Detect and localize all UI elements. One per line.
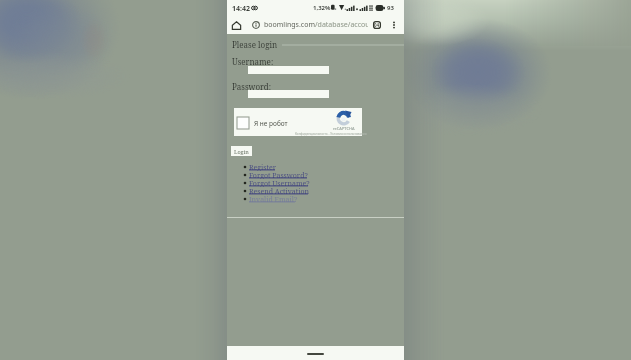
staticText: 14:42 bbox=[232, 4, 250, 14]
staticText: Forgot Password? bbox=[249, 171, 308, 179]
staticText: reCAPTCHA bbox=[333, 126, 355, 131]
button[interactable]: Forgot Password? bbox=[243, 171, 420, 179]
button[interactable]: Register bbox=[243, 163, 420, 171]
staticText: 04 bbox=[374, 22, 380, 28]
staticText: Конфиденциальность - Условия использован… bbox=[295, 132, 367, 136]
staticText: Forgot Username? bbox=[249, 179, 310, 187]
staticText: boomlings.com bbox=[264, 20, 315, 30]
button[interactable]: boomlings.com bbox=[252, 15, 368, 34]
staticText: Я не робот bbox=[254, 119, 288, 128]
button[interactable]: Resend Activation bbox=[243, 187, 420, 195]
staticText: Register bbox=[249, 163, 277, 171]
staticText: /database/accoun bbox=[315, 20, 368, 30]
staticText: Resend Activation bbox=[249, 187, 310, 195]
button[interactable]: I'm not a robot checkbox bbox=[237, 117, 249, 129]
staticText: Password: bbox=[232, 81, 272, 92]
button[interactable]: Invalid Email? bbox=[243, 195, 420, 203]
staticText: Please login bbox=[232, 39, 278, 50]
staticText: Invalid Email? bbox=[249, 195, 298, 203]
button[interactable]: Tabs bbox=[372, 20, 382, 30]
button[interactable]: Home bbox=[231, 20, 242, 31]
button[interactable]: Login bbox=[231, 146, 252, 156]
staticText: Login bbox=[234, 148, 249, 155]
staticText: 93 bbox=[387, 4, 394, 12]
staticText: 1,32% bbox=[313, 4, 331, 12]
staticText: Username: bbox=[232, 56, 274, 67]
button[interactable]: Forgot Username? bbox=[243, 179, 420, 187]
button[interactable]: More options bbox=[388, 19, 399, 30]
